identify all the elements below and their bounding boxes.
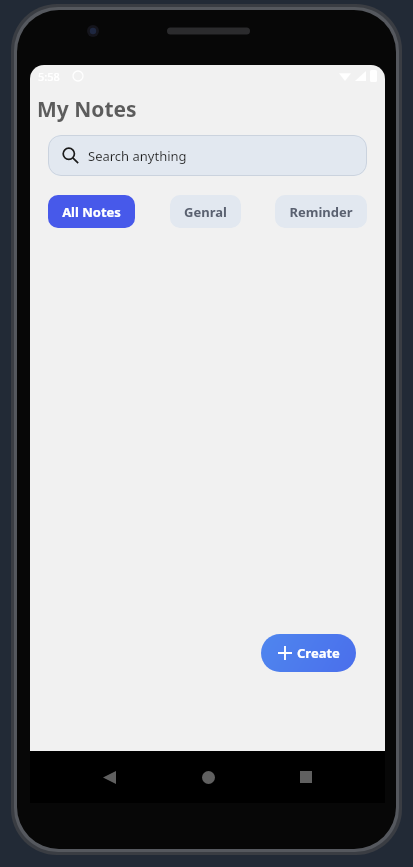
button[interactable]: Create xyxy=(261,634,356,672)
button[interactable]: Recent apps xyxy=(286,757,326,797)
staticText: 5:58 xyxy=(38,69,60,84)
staticText: Search anything xyxy=(88,147,187,165)
button[interactable]: Reminder xyxy=(275,195,367,228)
button[interactable]: Home xyxy=(188,757,228,797)
button[interactable]: Search anything xyxy=(48,135,367,176)
button[interactable]: Genral xyxy=(170,195,241,228)
button[interactable]: All Notes xyxy=(48,195,135,228)
button[interactable]: Back xyxy=(89,757,129,797)
staticText: Create xyxy=(297,644,340,662)
staticText: Genral xyxy=(184,203,227,221)
staticText: Reminder xyxy=(289,203,353,221)
staticText: All Notes xyxy=(62,203,121,221)
staticText: My Notes xyxy=(37,95,137,124)
